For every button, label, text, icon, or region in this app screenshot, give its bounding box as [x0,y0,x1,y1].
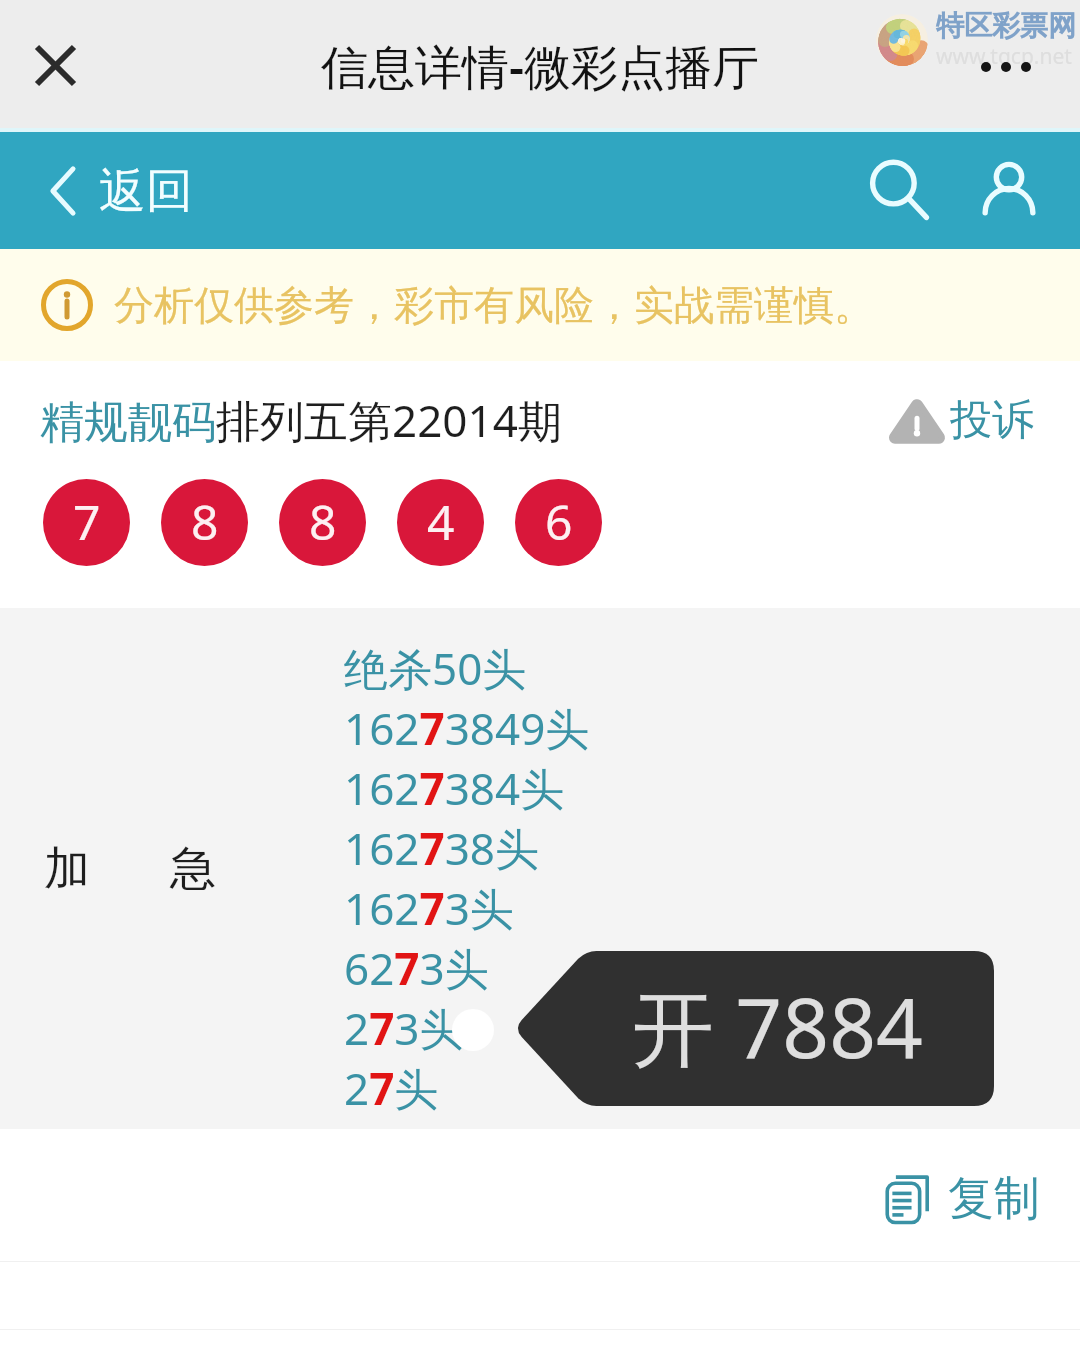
staticText: 急 [170,840,216,898]
staticText: 273头 [344,998,464,1058]
staticText: 27头 [344,1058,439,1118]
staticText: 16273849头 [344,698,590,758]
staticText: 返回 [99,162,193,221]
staticText: 8 [309,489,337,554]
staticText: 6 [545,489,573,554]
button[interactable]: 复制 [870,1160,1080,1238]
button[interactable]: 返回 [0,151,211,230]
staticText: 162738头 [344,818,540,878]
staticText: 复制 [948,1170,1040,1228]
staticText: 8 [191,489,219,554]
button[interactable]: 投诉 [892,394,1034,447]
staticText: 绝杀50头 [344,638,527,698]
button[interactable]: 开 7884 [514,951,994,1106]
staticText: 精规靓码排列五第22014期 [40,390,562,450]
staticText: 1627384头 [344,758,565,818]
button[interactable]: Search [850,141,950,241]
staticText: 6273头 [344,938,489,998]
staticText: 7 [73,489,101,554]
staticText: 加 [44,840,90,898]
staticText: 16273头 [344,878,514,938]
button[interactable]: Close [21,31,89,99]
staticText: 分析仅供参考，彩市有风险，实战需谨慎。 [114,280,874,330]
staticText: 特区彩票网 [936,8,1076,43]
staticText: 信息详情-微彩点播厅 [321,34,760,98]
staticText: 开 7884 [632,970,923,1082]
staticText: www.tqcp.net [936,42,1072,71]
button[interactable]: More options [967,49,1045,85]
button[interactable]: Account [959,141,1059,241]
staticText: 4 [427,489,455,554]
staticText: 投诉 [950,394,1034,447]
